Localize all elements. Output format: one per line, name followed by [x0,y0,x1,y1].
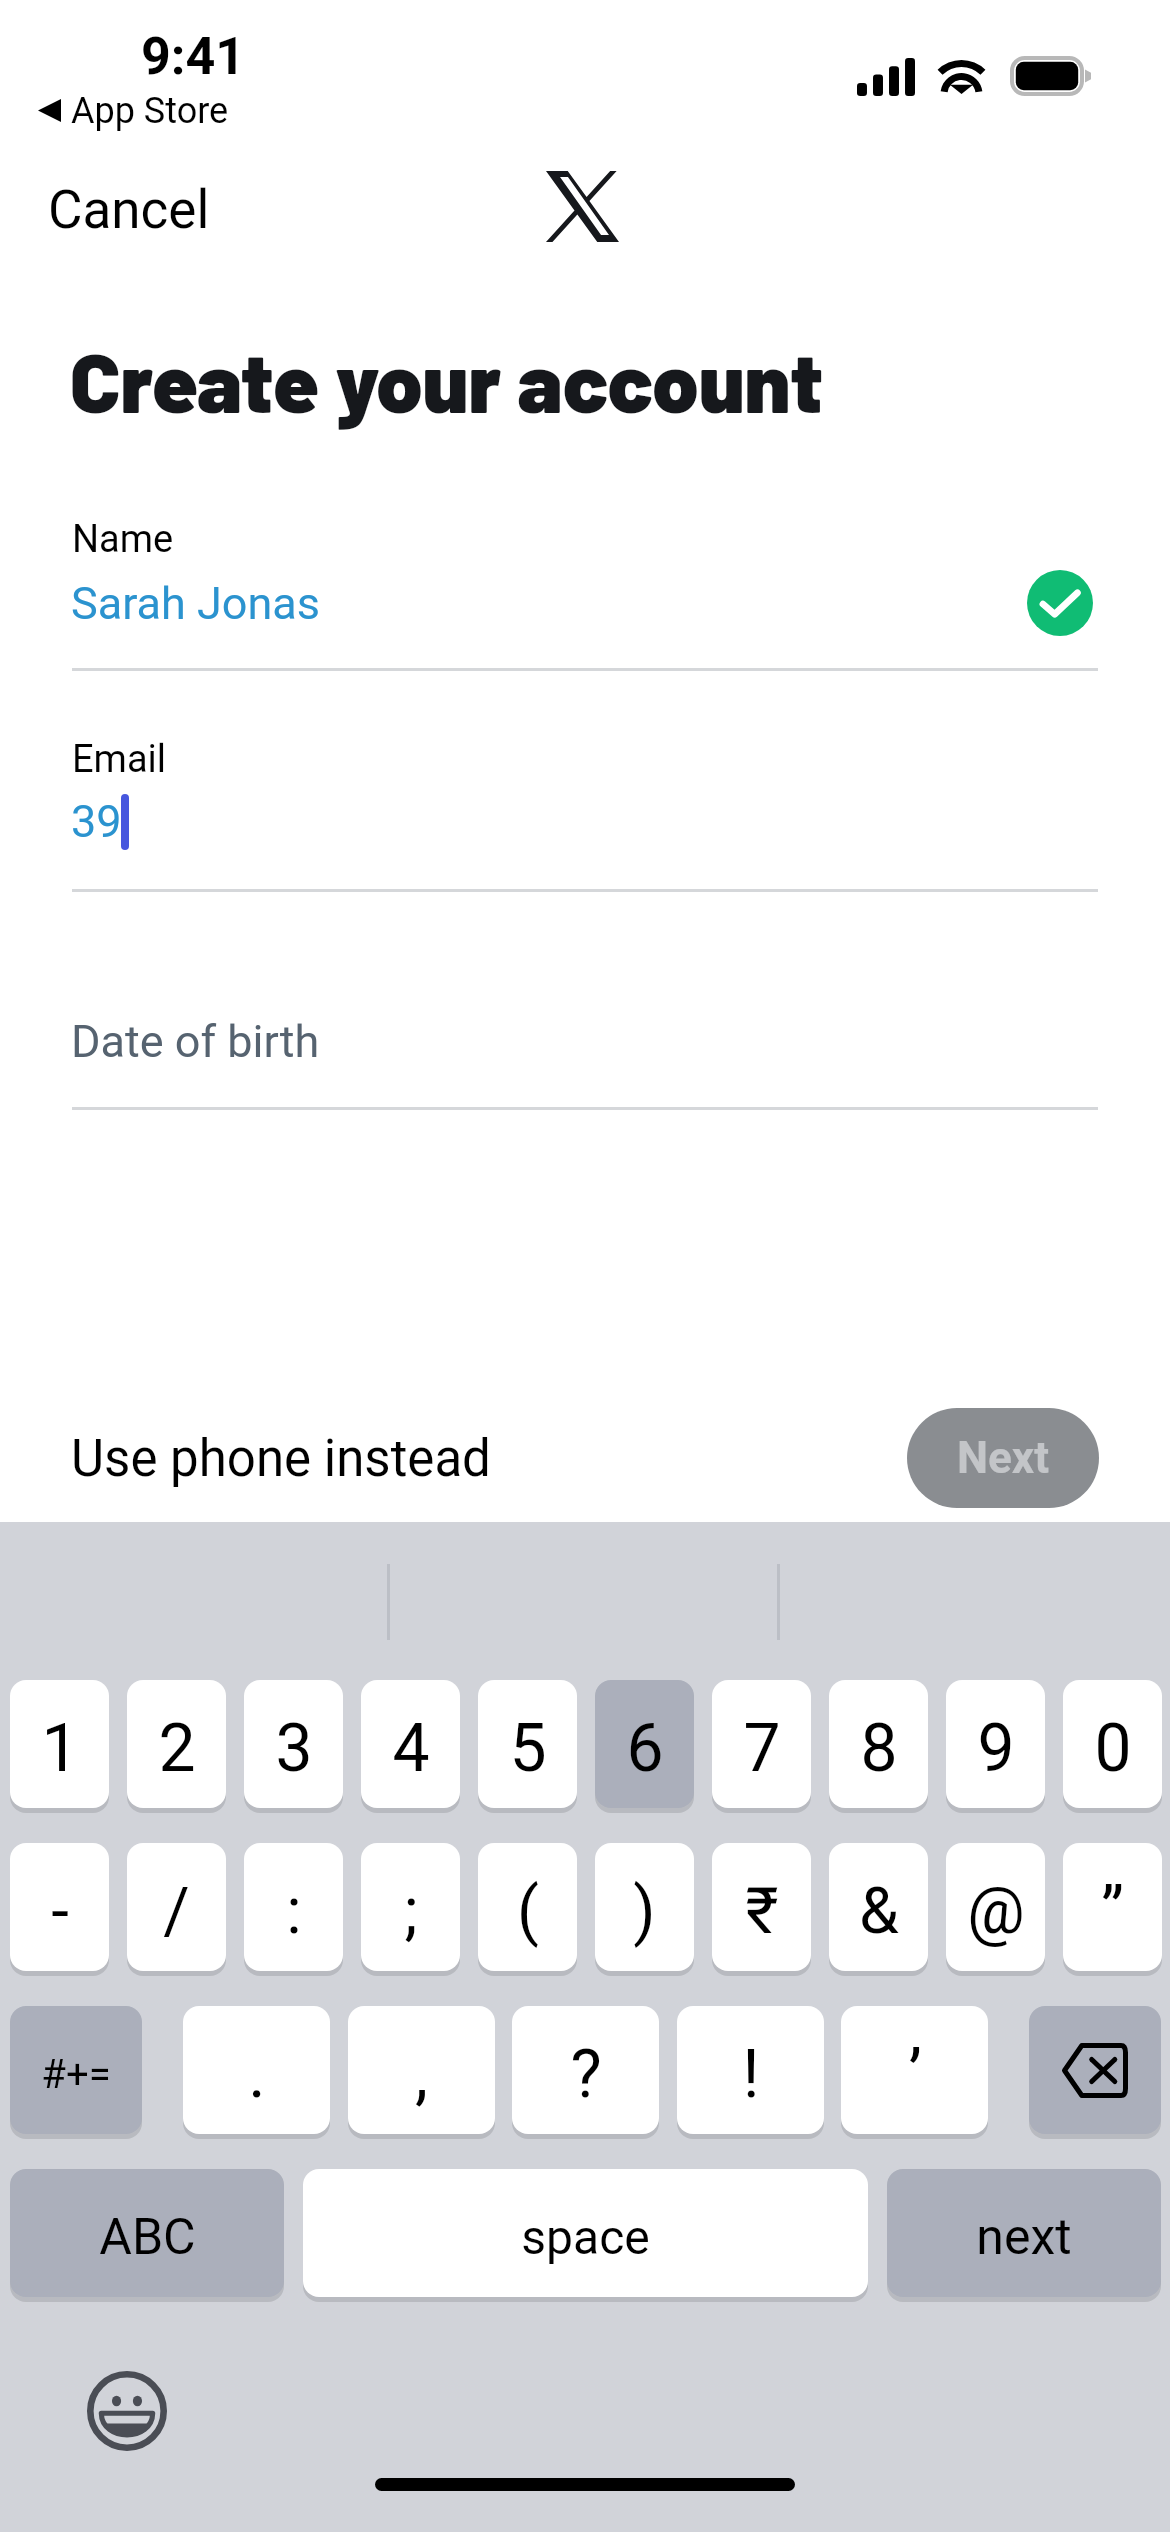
button[interactable]: Backspace [1029,2006,1161,2134]
staticText: & [859,1874,899,1949]
staticText: ” [1101,1874,1124,1949]
button[interactable]: 8 [829,1680,928,1808]
button[interactable]: 4 [361,1680,460,1808]
staticText: space [521,2209,650,2265]
button[interactable]: #+= [10,2006,142,2134]
button[interactable]: ( [478,1843,577,1971]
staticText: Next [957,1432,1050,1484]
button[interactable]: ; [361,1843,460,1971]
staticText: 1 [41,1710,79,1787]
button[interactable]: 7 [712,1680,811,1808]
button[interactable]: & [829,1843,928,1971]
button[interactable]: , [348,2006,495,2134]
staticText: . [248,2036,266,2113]
staticText: ABC [99,2208,196,2267]
staticText: 6 [626,1710,664,1787]
staticText: ( [517,1874,539,1949]
button[interactable]: Emoji keyboard [87,2371,167,2451]
button[interactable]: Name is valid [1027,570,1093,636]
button[interactable]: Next [907,1408,1099,1508]
staticText: #+= [41,2051,111,2098]
staticText: 9:41 [141,26,246,87]
staticText: Cancel [48,179,210,241]
button[interactable]: ₹ [712,1843,811,1971]
button[interactable]: 3 [244,1680,343,1808]
button[interactable]: / [127,1843,226,1971]
button[interactable]: 6 [595,1680,694,1808]
staticText: : [286,1874,302,1949]
button[interactable]: ” [1063,1843,1162,1971]
button[interactable]: Use phone instead [71,1429,491,1489]
staticText: App Store [71,90,229,132]
button[interactable]: space [303,2169,868,2297]
staticText: 3 [275,1710,313,1787]
staticText: 5 [509,1710,547,1787]
staticText: Date of birth [71,1015,320,1068]
staticText: / [163,1874,190,1949]
button[interactable]: - [10,1843,109,1971]
other: X [546,171,619,242]
staticText: next [976,2208,1072,2267]
staticText: 7 [743,1710,781,1787]
button[interactable]: Cancel [18,159,240,261]
staticText: - [51,1874,69,1949]
button[interactable]: ABC [10,2169,284,2297]
button[interactable]: Date of birth [71,1015,320,1068]
button[interactable]: 9 [946,1680,1045,1808]
button[interactable]: 5 [478,1680,577,1808]
button[interactable]: : [244,1843,343,1971]
staticText: 4 [392,1710,430,1787]
staticText: ) [633,1874,656,1949]
staticText: Name [72,517,174,562]
button[interactable]: 2 [127,1680,226,1808]
button[interactable]: ? [512,2006,659,2134]
button[interactable]: ’ [841,2006,988,2134]
staticText: ; [404,1874,418,1949]
staticText: ! [742,2036,760,2113]
staticText: ₹ [745,1874,779,1949]
staticText: Email [72,737,167,782]
staticText: Create your account [70,330,823,430]
staticText: 8 [860,1710,898,1787]
staticText: 0 [1094,1710,1132,1787]
button[interactable]: . [183,2006,330,2134]
staticText: 39 [71,795,122,848]
staticText: Use phone instead [71,1429,491,1489]
button[interactable]: next [887,2169,1161,2297]
staticText: @ [967,1874,1025,1949]
button[interactable]: @ [946,1843,1045,1971]
staticText: , [415,2036,428,2113]
staticText: 9 [977,1710,1015,1787]
staticText: ’ [908,2036,922,2113]
staticText: ? [570,2036,602,2113]
button[interactable]: 0 [1063,1680,1162,1808]
button[interactable]: 1 [10,1680,109,1808]
staticText: Sarah Jonas [71,577,321,630]
button[interactable]: ) [595,1843,694,1971]
button[interactable]: ! [677,2006,824,2134]
staticText: 2 [158,1710,196,1787]
